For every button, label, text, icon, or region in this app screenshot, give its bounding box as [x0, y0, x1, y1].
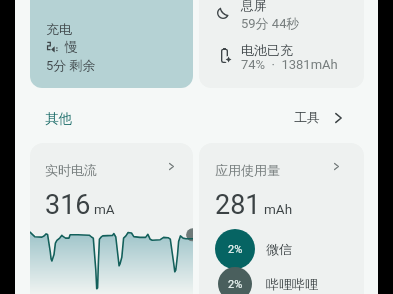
staticText: 2%: [228, 243, 243, 256]
staticText: 316: [45, 189, 91, 221]
staticText: mAh: [264, 201, 293, 217]
staticText: 电池已充: [241, 42, 293, 58]
button[interactable]: 工具: [290, 104, 346, 130]
staticText: 工具: [294, 109, 320, 125]
staticText: 59分 44秒: [241, 15, 300, 31]
staticText: 哔哩哔哩: [266, 276, 318, 292]
button[interactable]: 2%: [199, 264, 364, 294]
staticText: 微信: [266, 241, 292, 257]
staticText: 5分 剩余: [46, 57, 96, 73]
staticText: 充电: [46, 21, 72, 37]
button[interactable]: 应用使用量: [199, 143, 364, 294]
staticText: 2%: [228, 278, 243, 291]
staticText: 息屏: [241, 0, 267, 13]
button[interactable]: 实时电流: [30, 143, 193, 294]
button[interactable]: 2%: [199, 229, 364, 269]
staticText: 74% · 1381mAh: [241, 57, 338, 72]
button[interactable]: 息屏: [199, 0, 364, 88]
staticText: 281: [215, 189, 261, 221]
staticText: 应用使用量: [215, 162, 280, 178]
staticText: 实时电流: [45, 162, 97, 178]
staticText: 慢: [65, 38, 78, 54]
button[interactable]: 其他: [42, 107, 75, 130]
button[interactable]: 充电: [30, 0, 193, 88]
staticText: mA: [94, 201, 115, 217]
